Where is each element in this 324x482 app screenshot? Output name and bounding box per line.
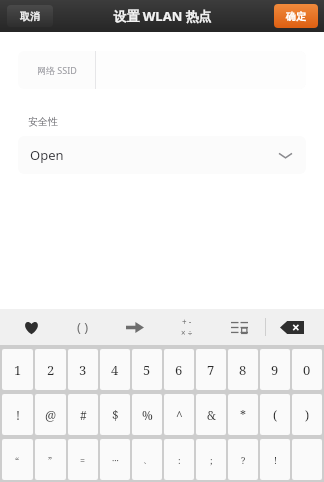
button[interactable]: 5 (132, 349, 162, 390)
button[interactable]: 确定 (274, 4, 318, 28)
staticText: 1 (14, 361, 22, 379)
button[interactable]: 8 (228, 349, 258, 390)
staticText: ? (241, 454, 246, 466)
staticText: # (80, 407, 87, 423)
staticText: 、 (143, 454, 152, 465)
staticText: = (80, 454, 86, 466)
button[interactable]: ··· (100, 439, 130, 480)
button[interactable]: = (68, 439, 98, 480)
button[interactable]: 1 (2, 349, 33, 390)
button[interactable]: 4 (100, 349, 130, 390)
staticText: @ (45, 407, 57, 423)
button[interactable]: 9 (260, 349, 290, 390)
button[interactable]: 取消 (7, 5, 53, 27)
button[interactable]: ! (2, 394, 33, 435)
staticText: Open (30, 146, 64, 164)
button[interactable]: Arrow (109, 309, 161, 345)
button[interactable]: 6 (164, 349, 194, 390)
staticText: ) (305, 407, 310, 423)
button[interactable]: ; (196, 439, 226, 480)
staticText: * (240, 407, 247, 423)
button[interactable]: # (68, 394, 98, 435)
staticText: 0 (303, 361, 311, 379)
staticText: 8 (239, 361, 247, 379)
staticText: 2 (47, 361, 55, 379)
button[interactable]: ! (260, 439, 290, 480)
staticText: % (142, 407, 153, 423)
staticText: & (207, 407, 216, 423)
button[interactable]: Math symbols (161, 309, 213, 345)
staticText: ! (16, 407, 20, 423)
button[interactable]: ) (292, 394, 322, 435)
button[interactable]: ^ (164, 394, 194, 435)
button[interactable]: ( (260, 394, 290, 435)
button[interactable]: 、 (132, 439, 162, 480)
staticText: “ (15, 454, 20, 466)
staticText: 4 (111, 361, 119, 379)
button[interactable]: & (196, 394, 226, 435)
button[interactable]: @ (35, 394, 66, 435)
button[interactable]: Emoji (6, 309, 57, 345)
staticText: ··· (112, 454, 119, 466)
button[interactable]: : (164, 439, 194, 480)
button[interactable]: 0 (292, 349, 322, 390)
staticText: × ÷ (181, 327, 193, 338)
staticText: 确定 (286, 10, 306, 23)
button[interactable]: 2 (35, 349, 66, 390)
button[interactable]: Open (18, 136, 306, 174)
staticText: $ (112, 407, 119, 423)
staticText: 网络 SSID (37, 64, 77, 76)
button[interactable]: ? (228, 439, 258, 480)
staticText: ; (210, 454, 213, 466)
staticText: ^ (176, 407, 183, 423)
button[interactable]: * (228, 394, 258, 435)
button[interactable]: 3 (68, 349, 98, 390)
button[interactable]: “ (2, 439, 33, 480)
staticText: 3 (79, 361, 87, 379)
staticText: 5 (143, 361, 151, 379)
staticText: 设置 WLAN 热点 (113, 7, 212, 25)
button[interactable]: List (213, 309, 265, 345)
staticText: ( (273, 407, 278, 423)
staticText: 9 (271, 361, 279, 379)
staticText: ! (274, 454, 277, 466)
button[interactable]: ” (35, 439, 66, 480)
button[interactable]: 7 (196, 349, 226, 390)
staticText: 7 (207, 361, 215, 379)
button[interactable]: 网络 SSID (18, 51, 306, 89)
button[interactable]: $ (100, 394, 130, 435)
staticText: ” (48, 454, 53, 466)
staticText: : (178, 454, 181, 466)
staticText: 安全性 (28, 115, 58, 128)
button[interactable]: Brackets (57, 309, 109, 345)
button[interactable]: % (132, 394, 162, 435)
button[interactable]: Delete (266, 309, 318, 345)
staticText: + - (182, 316, 192, 327)
staticText: ( ) (77, 318, 89, 336)
staticText: 取消 (20, 10, 40, 23)
staticText: 6 (175, 361, 183, 379)
